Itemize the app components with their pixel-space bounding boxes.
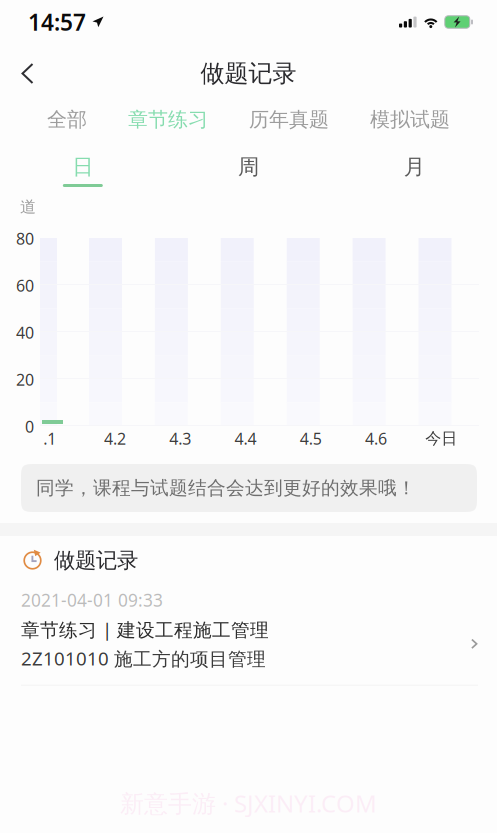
- button[interactable]: 章节练习: [128, 100, 208, 139]
- button[interactable]: Back: [0, 53, 48, 94]
- staticText: 40: [16, 322, 34, 343]
- staticText: 模拟试题: [370, 107, 450, 132]
- staticText: 今日: [425, 429, 457, 448]
- staticText: .1: [43, 428, 56, 449]
- staticText: 做题记录: [54, 547, 138, 574]
- button[interactable]: 2021-04-01 09:33: [0, 585, 497, 686]
- staticText: 4.6: [365, 428, 387, 449]
- button[interactable]: 月: [331, 136, 497, 190]
- staticText: 月: [404, 154, 425, 180]
- staticText: 4.3: [169, 428, 191, 449]
- staticText: 20: [16, 369, 34, 390]
- staticText: 全部: [47, 107, 87, 132]
- staticText: 60: [16, 275, 34, 296]
- button[interactable]: 全部: [47, 100, 87, 139]
- staticText: 2021-04-01 09:33: [21, 588, 163, 611]
- staticText: 4.5: [300, 428, 322, 449]
- staticText: 周: [238, 154, 259, 180]
- staticText: 新意手游 · SJXINYI.COM: [120, 787, 377, 819]
- staticText: 80: [16, 228, 34, 249]
- staticText: 章节练习: [128, 107, 208, 132]
- staticText: 2Z101010 施工方的项目管理: [21, 646, 266, 671]
- staticText: 0: [25, 416, 34, 437]
- staticText: 日: [72, 154, 93, 180]
- staticText: 道: [20, 197, 36, 217]
- staticText: 14:57: [28, 7, 86, 37]
- staticText: 历年真题: [249, 107, 329, 132]
- button[interactable]: 模拟试题: [370, 100, 450, 139]
- staticText: 做题记录: [200, 59, 296, 88]
- staticText: 4.2: [104, 428, 126, 449]
- button[interactable]: 日: [0, 136, 166, 190]
- button[interactable]: 历年真题: [249, 100, 329, 139]
- button[interactable]: 周: [166, 136, 331, 190]
- staticText: 章节练习 | 建设工程施工管理: [21, 617, 269, 642]
- staticText: 4.4: [234, 428, 256, 449]
- staticText: 同学，课程与试题结合会达到更好的效果哦！: [36, 476, 416, 499]
